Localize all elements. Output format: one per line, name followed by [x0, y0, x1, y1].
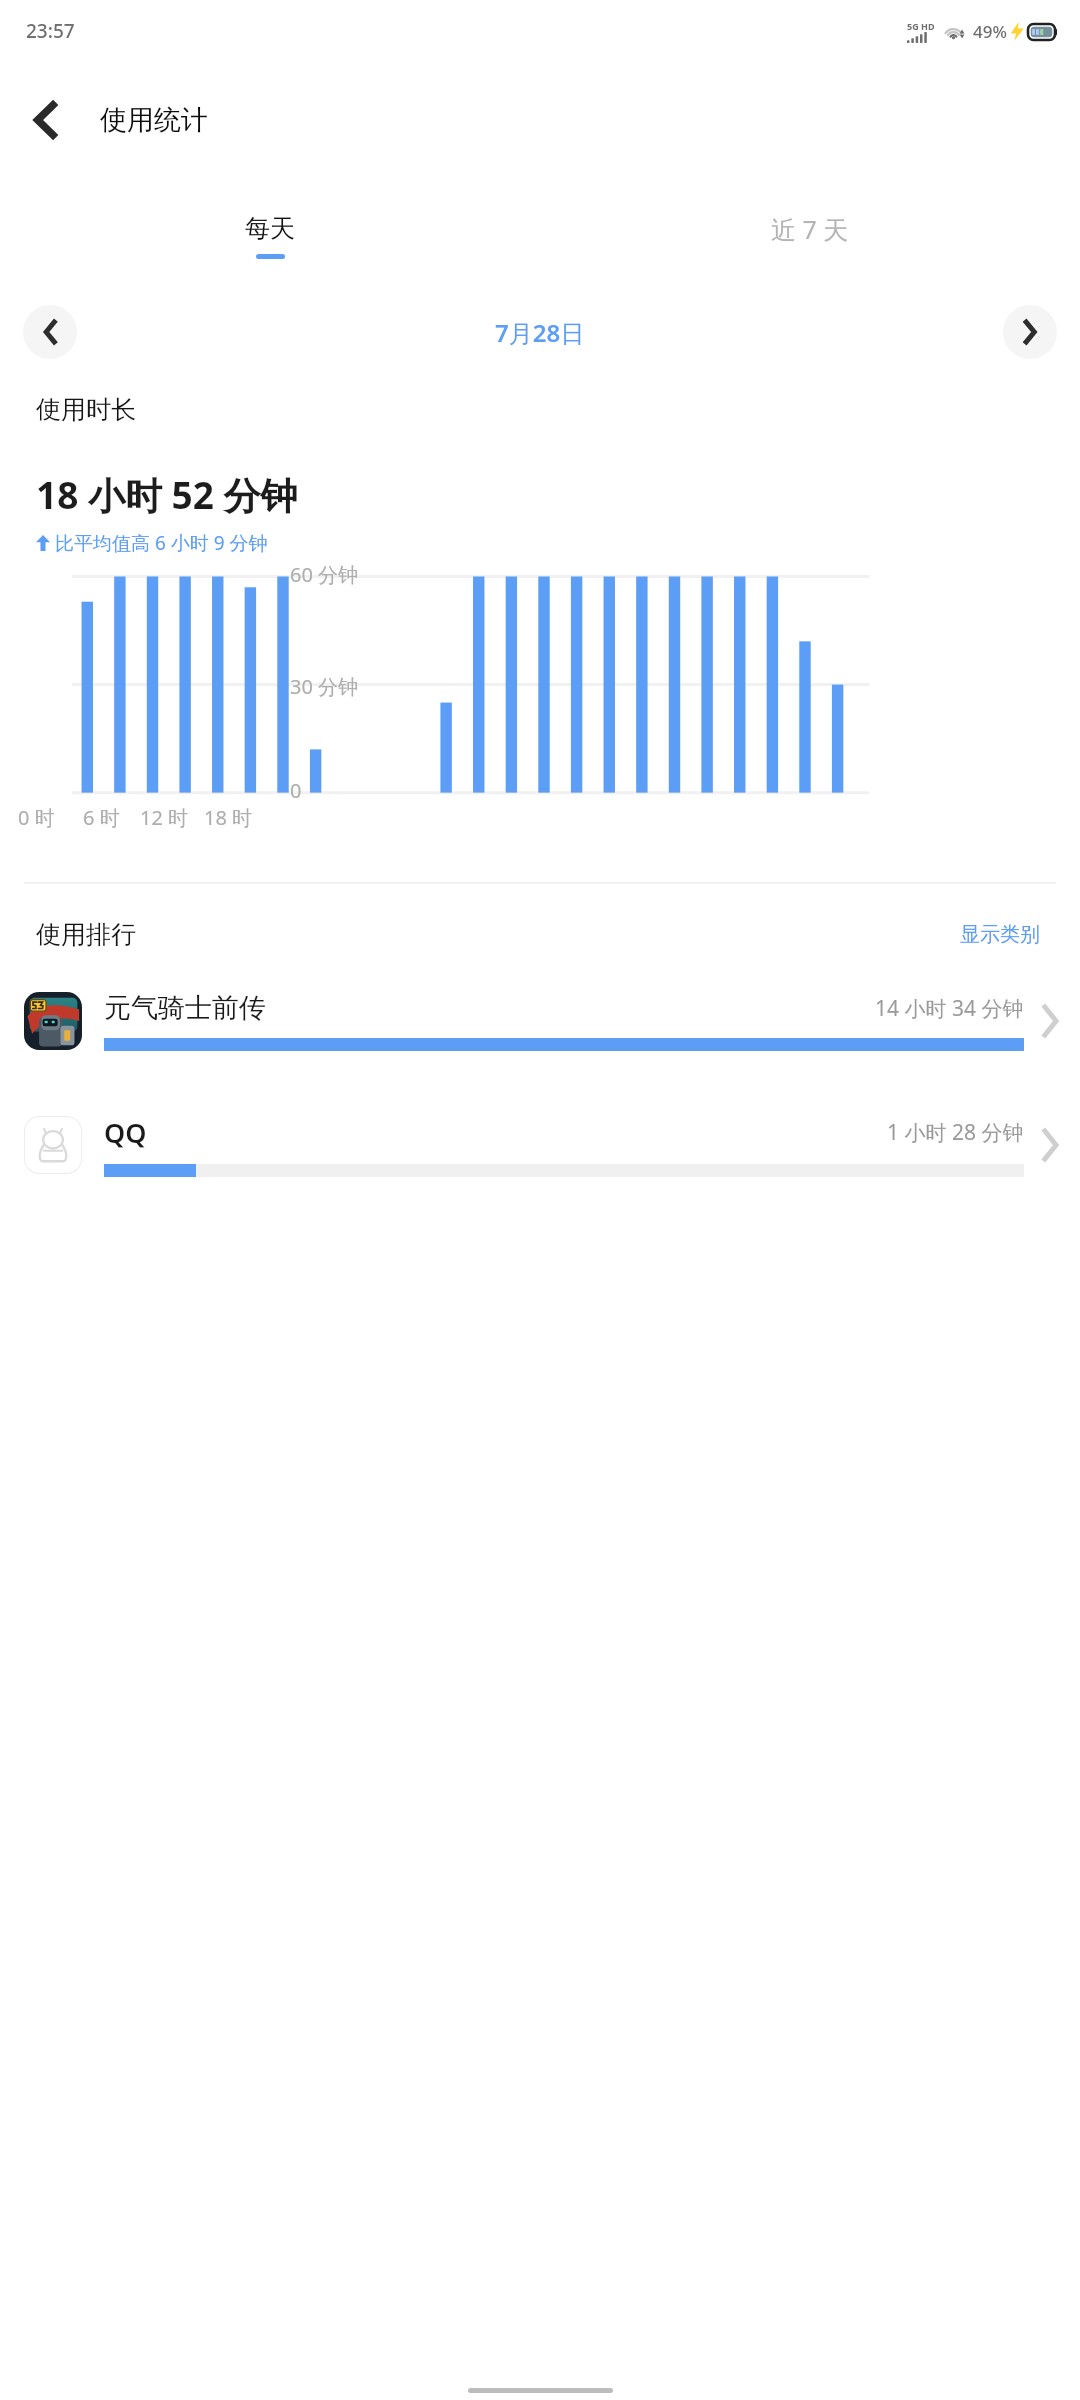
staticText: 49%: [973, 20, 1007, 43]
staticText: 23:57: [26, 18, 75, 44]
button[interactable]: 近 7 天: [540, 178, 1080, 294]
staticText: 14 小时 34 分钟: [875, 994, 1024, 1023]
staticText: 每天: [245, 213, 295, 244]
staticText: 18 时: [204, 804, 253, 831]
staticText: 12 时: [140, 804, 189, 831]
button[interactable]: QQ: [0, 1097, 1080, 1193]
button[interactable]: 显示类别: [956, 918, 1044, 951]
button[interactable]: 元气骑士前传: [0, 973, 1080, 1069]
staticText: 6 时: [83, 804, 120, 831]
button[interactable]: Previous day: [23, 305, 77, 359]
staticText: 30 分钟: [290, 673, 359, 700]
staticText: 显示类别: [960, 922, 1040, 947]
other: Open 元气骑士前传 details: [1042, 1007, 1058, 1035]
button[interactable]: 每天: [0, 178, 540, 294]
staticText: 0 时: [18, 804, 55, 831]
staticText: 5G HD: [907, 20, 935, 32]
other: Open QQ details: [1042, 1131, 1058, 1159]
staticText: 使用排行: [36, 919, 136, 950]
button[interactable]: Back: [20, 94, 72, 146]
staticText: 18 小时 52 分钟: [36, 469, 298, 520]
button[interactable]: Next day: [1003, 305, 1057, 359]
staticText: QQ: [104, 1114, 147, 1151]
staticText: 7月28日: [495, 316, 585, 349]
staticText: 使用统计: [100, 103, 208, 137]
staticText: 近 7 天: [771, 212, 849, 246]
staticText: 使用时长: [36, 394, 136, 425]
staticText: 0: [290, 777, 302, 804]
staticText: 1 小时 28 分钟: [887, 1118, 1024, 1147]
staticText: 60 分钟: [290, 561, 359, 588]
staticText: 比平均值高 6 小时 9 分钟: [55, 530, 268, 556]
staticText: 元气骑士前传: [104, 991, 266, 1025]
